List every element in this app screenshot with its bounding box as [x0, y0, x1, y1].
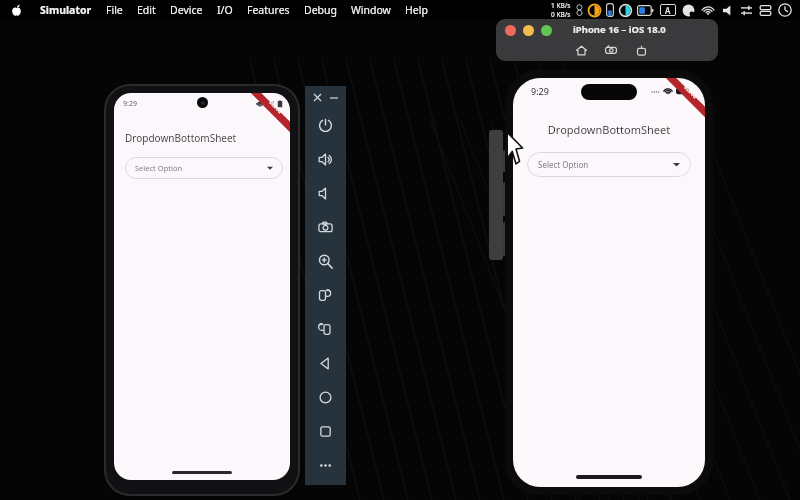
- button[interactable]: Debug: [297, 3, 344, 17]
- button[interactable]: Select Option: [527, 152, 691, 177]
- button[interactable]: Screenshot: [603, 42, 619, 58]
- staticText: Device: [170, 3, 203, 17]
- button[interactable]: Minimize: [328, 92, 339, 103]
- staticText: DropdownBottomSheet: [125, 131, 237, 145]
- button[interactable]: Power: [305, 108, 346, 142]
- staticText: iPhone 16 – iOS 18.0: [573, 23, 666, 36]
- button[interactable]: Overview: [305, 414, 346, 448]
- button[interactable]: Home: [573, 42, 589, 58]
- button[interactable]: Window: [344, 3, 398, 17]
- staticText: DropdownBottomSheet: [513, 122, 705, 137]
- staticText: DEBUG: [683, 84, 699, 100]
- staticText: Debug: [304, 3, 337, 17]
- staticText: 9:29: [123, 99, 137, 109]
- button[interactable]: Volume down: [305, 176, 346, 210]
- button[interactable]: Features: [240, 3, 297, 17]
- button[interactable]: Home: [305, 380, 346, 414]
- button[interactable]: Minimize: [523, 25, 534, 36]
- button[interactable]: Maximize: [541, 25, 552, 36]
- staticText: File: [106, 3, 123, 17]
- button[interactable]: Zoom: [305, 244, 346, 278]
- button[interactable]: Close: [312, 92, 323, 103]
- staticText: 9:29: [531, 85, 549, 97]
- staticText: Window: [351, 3, 391, 17]
- button[interactable]: Volume up: [305, 142, 346, 176]
- button[interactable]: Close: [505, 25, 516, 36]
- button[interactable]: More: [305, 448, 346, 482]
- button[interactable]: Help: [398, 3, 435, 17]
- button[interactable]: Record: [633, 42, 649, 58]
- button[interactable]: File: [99, 3, 130, 17]
- staticText: Simulator: [40, 3, 92, 17]
- button[interactable]: Rotate right: [305, 312, 346, 346]
- button[interactable]: Rotate left: [305, 278, 346, 312]
- staticText: Help: [405, 3, 428, 17]
- staticText: I/O: [217, 3, 233, 17]
- staticText: Select Option: [538, 159, 589, 170]
- staticText: A: [665, 5, 671, 16]
- button[interactable]: I/O: [210, 3, 240, 17]
- staticText: Edit: [137, 3, 156, 17]
- staticText: Select Option: [135, 163, 183, 173]
- staticText: 0 KB/s: [551, 10, 571, 19]
- staticText: Features: [247, 3, 290, 17]
- button[interactable]: Simulator: [33, 3, 99, 17]
- button[interactable]: Back: [305, 346, 346, 380]
- staticText: DEBUG: [268, 99, 284, 115]
- staticText: 1 KB/s: [551, 1, 571, 10]
- button[interactable]: Edit: [130, 3, 163, 17]
- button[interactable]: Device: [163, 3, 210, 17]
- button[interactable]: Select Option: [125, 157, 283, 179]
- button[interactable]: Screenshot: [305, 210, 346, 244]
